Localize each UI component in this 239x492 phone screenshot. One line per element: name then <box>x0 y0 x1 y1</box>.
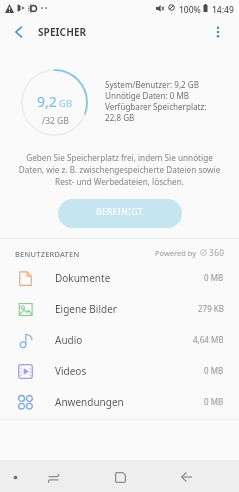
staticText: SPEICHER <box>38 25 87 39</box>
staticText: Anwendungen <box>55 395 124 409</box>
button[interactable]: Back <box>175 465 199 489</box>
staticText: Powered by <box>155 248 197 258</box>
staticText: Dokumente <box>55 271 111 285</box>
staticText: 0 MB <box>204 272 224 283</box>
staticText: 4,64 MB <box>193 334 224 345</box>
button[interactable]: Home <box>108 465 132 489</box>
staticText: 0 MB <box>204 396 224 407</box>
button[interactable]: BEREINIGT <box>58 199 182 228</box>
button[interactable]: Recent apps <box>41 465 65 489</box>
staticText: Geben Sie Speicherplatz frei, indem Sie … <box>16 152 223 187</box>
button[interactable]: Audio <box>0 324 239 355</box>
staticText: Verfügbarer Speicherplatz: <box>105 101 207 112</box>
button[interactable]: Videos <box>0 355 239 386</box>
staticText: System/Benutzer: 9,2 GB <box>105 79 199 90</box>
staticText: 279 KB <box>198 303 224 314</box>
staticText: 9,2 <box>37 92 57 111</box>
staticText: 0 MB <box>204 365 224 376</box>
staticText: 14:49 <box>212 4 234 16</box>
staticText: 100% <box>179 4 201 16</box>
staticText: BEREINIGT <box>96 206 144 218</box>
staticText: 360 <box>209 247 225 258</box>
button[interactable]: Anwendungen <box>0 386 239 417</box>
button[interactable]: Dokumente <box>0 262 239 293</box>
staticText: Unnötige Daten: 0 MB <box>105 90 190 101</box>
button[interactable]: Menu <box>3 465 27 489</box>
staticText: /32 GB <box>42 115 69 127</box>
staticText: Eigene Bilder <box>55 302 117 316</box>
button[interactable]: More options <box>207 21 229 43</box>
button[interactable]: Back <box>8 21 30 43</box>
button[interactable]: Eigene Bilder <box>0 293 239 324</box>
staticText: Audio <box>55 333 83 347</box>
staticText: 22,8 GB <box>105 112 135 123</box>
staticText: GB <box>59 97 73 110</box>
staticText: BENUTZERDATEN <box>15 249 80 259</box>
staticText: Videos <box>55 364 87 378</box>
